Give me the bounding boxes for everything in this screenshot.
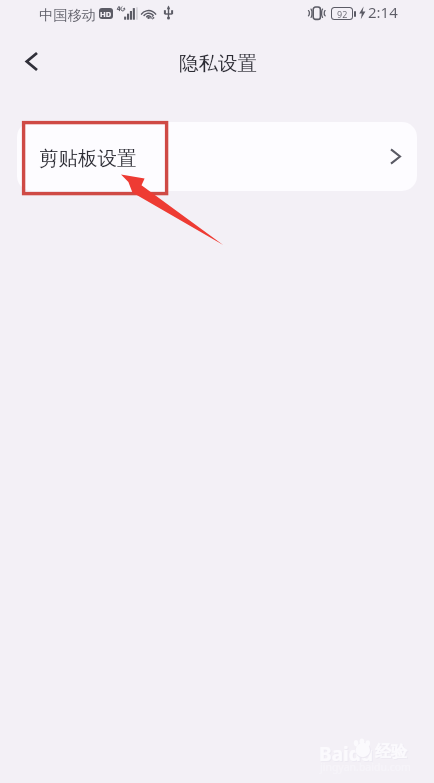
staticText: 隐私设置 xyxy=(179,51,257,76)
staticText: 经验 xyxy=(375,742,407,762)
staticText: HD xyxy=(100,9,112,19)
button[interactable]: 剪贴板设置 xyxy=(17,122,417,191)
staticText: 中国移动 xyxy=(39,6,96,24)
staticText: 剪贴板设置 xyxy=(39,146,137,171)
staticText: 2:14 xyxy=(368,2,398,22)
staticText: Baidu xyxy=(319,741,374,767)
staticText: 92 xyxy=(337,8,348,19)
staticText: Baidu xyxy=(320,742,375,768)
button[interactable]: Back xyxy=(15,45,48,78)
staticText: 经验 xyxy=(376,743,408,763)
